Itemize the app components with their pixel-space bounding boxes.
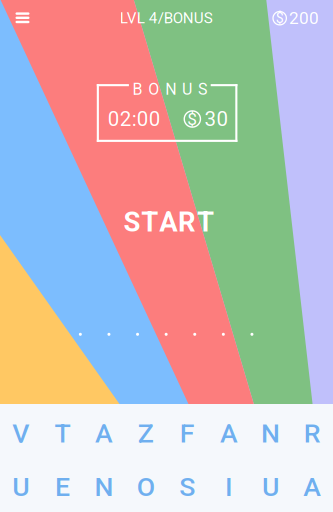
button[interactable]: N bbox=[83, 471, 125, 503]
staticText: T bbox=[54, 418, 70, 449]
button[interactable]: Menu bbox=[3, 3, 41, 33]
staticText: S bbox=[179, 471, 195, 503]
button[interactable]: A bbox=[208, 417, 250, 449]
staticText: $ bbox=[276, 10, 284, 26]
staticText: S bbox=[123, 206, 140, 238]
button[interactable]: N bbox=[250, 417, 291, 449]
staticText: N bbox=[95, 471, 114, 503]
button[interactable]: LVL 4/BONUS bbox=[91, 3, 241, 33]
staticText: Z bbox=[138, 418, 154, 449]
button[interactable]: V bbox=[0, 417, 42, 449]
button[interactable]: Z bbox=[125, 417, 166, 449]
staticText: I bbox=[225, 471, 233, 503]
button[interactable]: A bbox=[83, 417, 125, 449]
staticText: S bbox=[198, 80, 208, 99]
button[interactable]: R bbox=[291, 417, 333, 449]
staticText: V bbox=[12, 418, 29, 449]
button[interactable]: S bbox=[166, 471, 208, 503]
staticText: U bbox=[182, 80, 192, 99]
staticText: O bbox=[137, 471, 155, 503]
staticText: A bbox=[303, 471, 321, 503]
button[interactable]: U bbox=[250, 471, 291, 503]
staticText: F bbox=[180, 418, 195, 449]
staticText: O bbox=[148, 80, 159, 99]
button[interactable]: O bbox=[125, 471, 166, 503]
staticText: A bbox=[220, 418, 238, 449]
staticText: T bbox=[197, 206, 214, 238]
button[interactable]: T bbox=[42, 417, 83, 449]
staticText: 02:00 bbox=[108, 107, 161, 131]
staticText: N bbox=[165, 80, 176, 99]
staticText: T bbox=[141, 206, 158, 238]
button[interactable]: F bbox=[166, 417, 208, 449]
button[interactable]: I bbox=[208, 471, 250, 503]
button[interactable]: Coins: 200 bbox=[257, 3, 319, 33]
button[interactable]: E bbox=[42, 471, 83, 503]
staticText: 200 bbox=[289, 8, 319, 28]
button[interactable]: S bbox=[79, 199, 259, 245]
button[interactable]: A bbox=[291, 471, 333, 503]
staticText: A bbox=[95, 418, 113, 449]
staticText: $ bbox=[187, 109, 197, 129]
staticText: R bbox=[178, 206, 196, 238]
staticText: LVL 4/BONUS bbox=[120, 9, 213, 27]
staticText: N bbox=[261, 418, 280, 449]
button[interactable]: U bbox=[0, 471, 42, 503]
staticText: E bbox=[55, 471, 70, 503]
staticText: B bbox=[132, 80, 142, 99]
staticText: R bbox=[304, 418, 321, 449]
staticText: U bbox=[12, 471, 29, 503]
staticText: 30 bbox=[204, 107, 228, 131]
staticText: U bbox=[262, 471, 279, 503]
staticText: A bbox=[159, 206, 177, 238]
